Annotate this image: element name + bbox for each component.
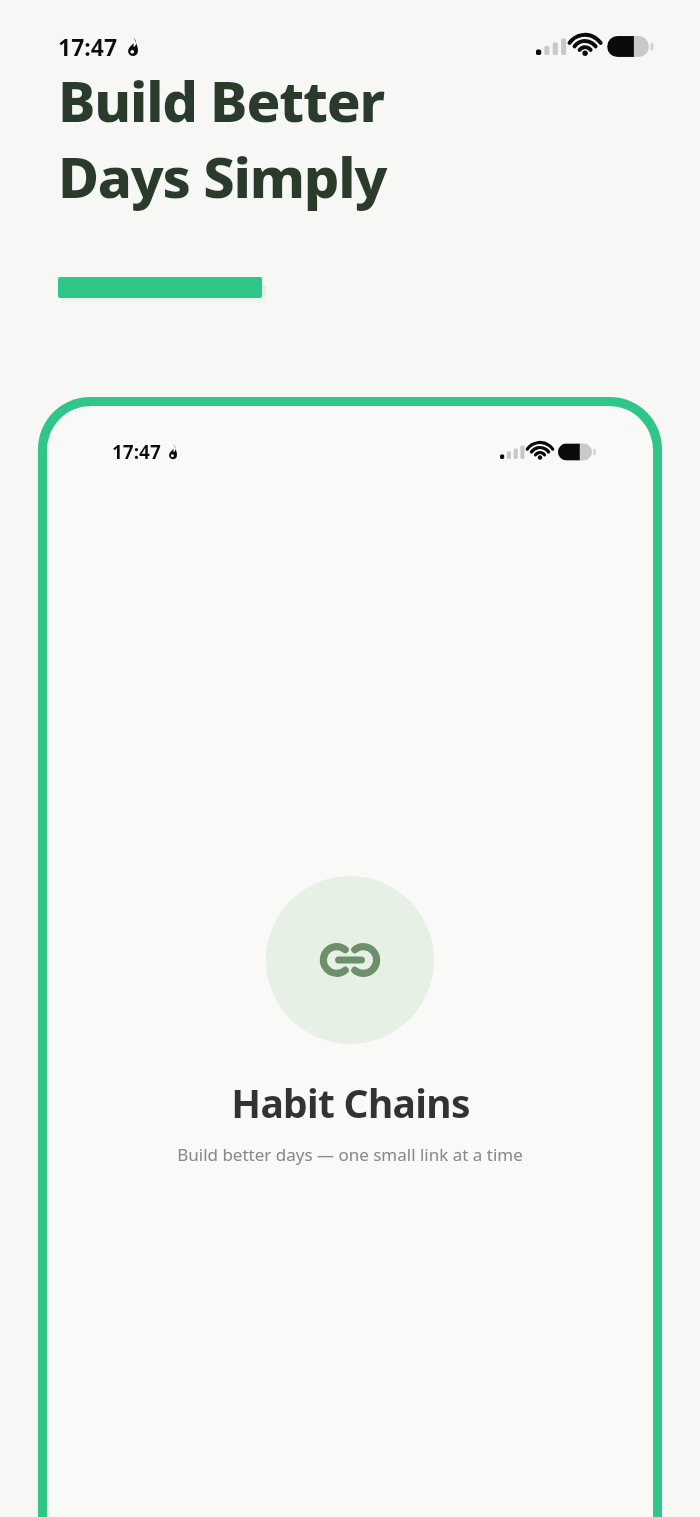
staticText: Days Simply	[58, 138, 387, 214]
staticText: Build Better	[58, 62, 384, 138]
staticText: Build better days — one small link at a …	[177, 1143, 523, 1166]
staticText: 17:47	[112, 439, 161, 465]
button[interactable]	[58, 277, 262, 298]
staticText: 17:47	[58, 31, 118, 62]
staticText: Habit Chains	[231, 1076, 470, 1129]
button[interactable]: Habit chain link	[266, 876, 434, 1044]
